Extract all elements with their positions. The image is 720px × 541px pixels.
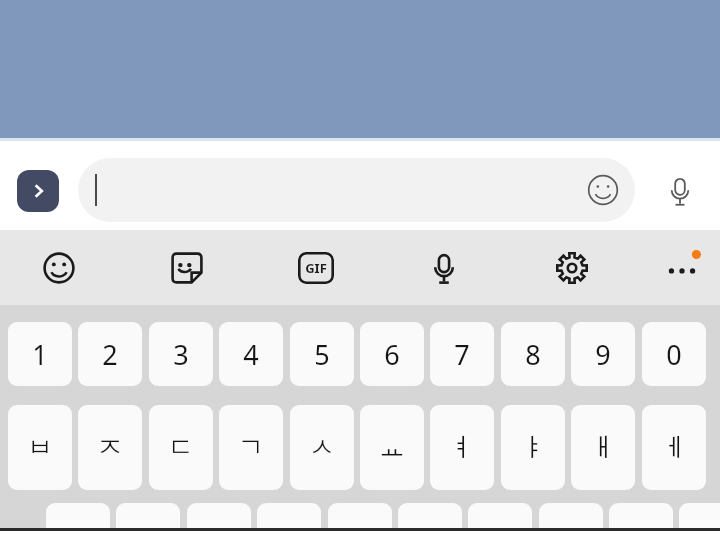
- button[interactable]: ㅐ: [571, 405, 635, 490]
- staticText: 8: [525, 336, 541, 373]
- button[interactable]: ㅂ: [8, 405, 72, 490]
- button[interactable]: [609, 503, 673, 541]
- staticText: ㅔ: [661, 431, 687, 464]
- button[interactable]: [328, 503, 392, 541]
- button[interactable]: ㄷ: [149, 405, 213, 490]
- staticText: ㅕ: [449, 431, 475, 464]
- button[interactable]: ㅅ: [290, 405, 354, 490]
- staticText: 7: [454, 336, 470, 373]
- button[interactable]: [539, 503, 603, 541]
- button[interactable]: Voice typing: [420, 244, 468, 292]
- staticText: ㄷ: [168, 431, 194, 464]
- button[interactable]: [187, 503, 251, 541]
- button[interactable]: 5: [290, 322, 354, 386]
- staticText: ㅐ: [590, 431, 616, 464]
- staticText: 4: [243, 336, 259, 373]
- button[interactable]: [257, 503, 321, 541]
- button[interactable]: Settings: [548, 244, 596, 292]
- button[interactable]: Emoji: [78, 158, 635, 222]
- staticText: GIF: [305, 259, 327, 277]
- staticText: ㅅ: [309, 431, 335, 464]
- button[interactable]: 2: [78, 322, 142, 386]
- button[interactable]: 3: [149, 322, 213, 386]
- staticText: ㅈ: [97, 431, 123, 464]
- staticText: 1: [32, 336, 48, 373]
- button[interactable]: ㅛ: [360, 405, 424, 490]
- staticText: 5: [314, 336, 330, 373]
- button[interactable]: Voice input: [658, 169, 702, 213]
- button[interactable]: 1: [8, 322, 72, 386]
- staticText: 0: [666, 336, 682, 373]
- button[interactable]: ㅑ: [501, 405, 565, 490]
- button[interactable]: ㅔ: [642, 405, 706, 490]
- button[interactable]: 8: [501, 322, 565, 386]
- button[interactable]: 0: [642, 322, 706, 386]
- staticText: 3: [173, 336, 189, 373]
- button[interactable]: [116, 503, 180, 541]
- staticText: 6: [384, 336, 400, 373]
- staticText: ㄱ: [238, 431, 264, 464]
- button[interactable]: 4: [219, 322, 283, 386]
- button[interactable]: 7: [430, 322, 494, 386]
- staticText: ㅂ: [27, 431, 53, 464]
- button[interactable]: Stickers: [163, 244, 211, 292]
- button[interactable]: 9: [571, 322, 635, 386]
- staticText: 9: [595, 336, 611, 373]
- button[interactable]: ㅕ: [430, 405, 494, 490]
- button[interactable]: More options: [658, 244, 706, 292]
- button[interactable]: Emoji: [583, 170, 623, 210]
- staticText: 2: [102, 336, 118, 373]
- button[interactable]: GIF: [292, 244, 340, 292]
- button[interactable]: [46, 503, 110, 541]
- button[interactable]: Emoji: [35, 244, 83, 292]
- button[interactable]: ㅈ: [78, 405, 142, 490]
- button[interactable]: Send: [17, 170, 59, 212]
- button[interactable]: GIF: [294, 246, 338, 290]
- button[interactable]: [468, 503, 532, 541]
- staticText: ㅑ: [520, 431, 546, 464]
- button[interactable]: 6: [360, 322, 424, 386]
- button[interactable]: [398, 503, 462, 541]
- staticText: ㅛ: [379, 431, 405, 464]
- button[interactable]: ㄱ: [219, 405, 283, 490]
- button[interactable]: [679, 503, 720, 541]
